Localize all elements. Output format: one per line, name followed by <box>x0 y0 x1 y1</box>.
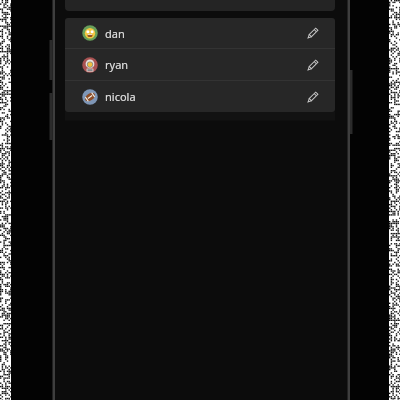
button[interactable]: dan <box>65 18 335 48</box>
button[interactable] <box>301 54 323 76</box>
button[interactable]: ryan <box>65 49 335 80</box>
button[interactable]: nicola <box>65 81 335 112</box>
button[interactable] <box>301 86 323 108</box>
button[interactable] <box>301 22 323 44</box>
staticText: nicola <box>105 89 136 104</box>
staticText: dan <box>105 26 125 41</box>
staticText: ryan <box>105 57 129 72</box>
